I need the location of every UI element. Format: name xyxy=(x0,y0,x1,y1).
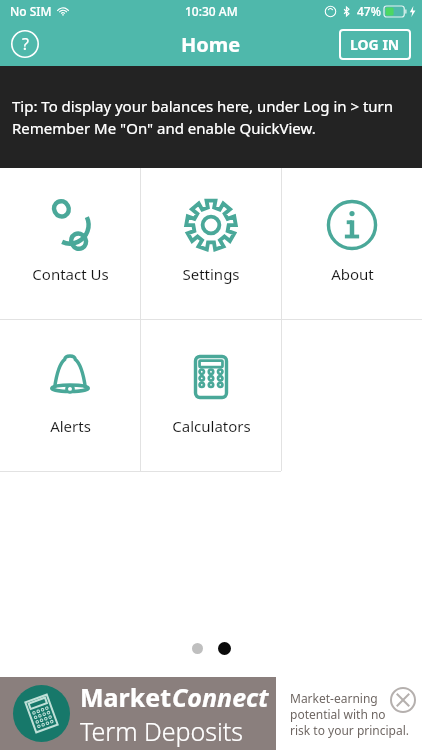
staticText: Market xyxy=(80,680,172,714)
button[interactable]: Settings xyxy=(141,168,281,319)
button[interactable] xyxy=(192,643,203,654)
staticText: Connect xyxy=(172,680,269,714)
button[interactable]: Close ad xyxy=(390,687,416,713)
button[interactable]: Calculators xyxy=(141,320,281,471)
staticText: 10:30 AM xyxy=(185,3,238,19)
button[interactable]: Alerts xyxy=(0,320,140,471)
staticText: Calculators xyxy=(172,416,251,436)
button[interactable]: Market xyxy=(0,677,276,750)
staticText: Home xyxy=(181,31,241,58)
staticText: No SIM xyxy=(10,3,52,19)
staticText: Contact Us xyxy=(32,264,109,284)
staticText: Alerts xyxy=(50,416,91,436)
button[interactable]: About xyxy=(282,168,422,319)
staticText: Term Deposits xyxy=(80,714,243,748)
staticText: Settings xyxy=(182,264,240,284)
button[interactable] xyxy=(218,642,231,655)
staticText: About xyxy=(331,264,374,284)
staticText: 47% xyxy=(357,3,381,19)
staticText: Tip: To display your balances here, unde… xyxy=(12,96,410,139)
staticText: ? xyxy=(22,33,29,55)
staticText: LOG IN xyxy=(350,35,400,54)
staticText: Market-earning potential with no risk to… xyxy=(290,690,410,738)
button[interactable]: LOG IN xyxy=(339,29,411,60)
button[interactable]: Help xyxy=(11,30,39,58)
button[interactable]: Contact Us xyxy=(0,168,140,319)
